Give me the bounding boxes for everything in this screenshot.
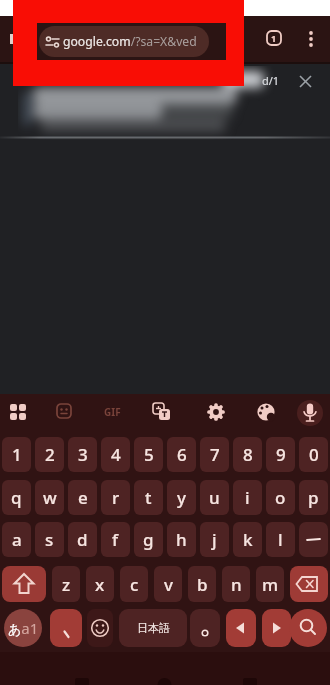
button[interactable]: q [2, 480, 31, 515]
staticText: g [143, 528, 154, 551]
button[interactable] [298, 24, 324, 52]
staticText: あa1 [8, 618, 39, 638]
button[interactable]: w [35, 480, 64, 515]
button[interactable]: i [233, 480, 262, 515]
button[interactable]: k [233, 522, 262, 557]
staticText: 6 [177, 443, 187, 466]
staticText: 9 [276, 443, 286, 466]
staticText: 1 [12, 443, 22, 466]
button[interactable]: 2 [35, 437, 64, 472]
button[interactable]: 3 [68, 437, 97, 472]
button[interactable]: 4 [101, 437, 130, 472]
button[interactable]: x [86, 566, 114, 602]
button[interactable]: e [68, 480, 97, 515]
button[interactable]: j [200, 522, 229, 557]
staticText: 0 [309, 443, 319, 466]
staticText: 5 [144, 443, 154, 466]
staticText: q [11, 486, 22, 509]
button[interactable]: u [200, 480, 229, 515]
button[interactable]: 5 [134, 437, 163, 472]
staticText: 2 [45, 443, 55, 466]
button[interactable] [2, 566, 46, 602]
staticText: k [243, 528, 253, 551]
staticText: w [43, 486, 57, 509]
button[interactable]: l [266, 522, 295, 557]
button[interactable]: h [167, 522, 196, 557]
button[interactable] [50, 609, 82, 647]
staticText: a [12, 528, 22, 551]
staticText: s [45, 528, 54, 551]
button[interactable] [148, 400, 176, 426]
staticText: l [278, 528, 283, 551]
staticText: e [78, 486, 88, 509]
staticText: x [95, 573, 105, 596]
button[interactable]: s [35, 522, 64, 557]
button[interactable]: 6 [167, 437, 196, 472]
button[interactable]: b [188, 566, 216, 602]
staticText: o [275, 486, 286, 509]
button[interactable] [50, 400, 78, 426]
staticText: 1 [271, 32, 277, 44]
button[interactable]: 8 [233, 437, 262, 472]
staticText: r [112, 486, 120, 509]
button[interactable]: d [68, 522, 97, 557]
button[interactable]: z [52, 566, 80, 602]
button[interactable] [299, 522, 328, 557]
staticText: y [177, 486, 186, 509]
button[interactable]: p [299, 480, 328, 515]
button[interactable] [226, 609, 256, 647]
button[interactable] [39, 26, 209, 57]
staticText: google.com/?sa=X&ved [63, 33, 197, 50]
button[interactable] [289, 609, 327, 647]
staticText: j [212, 528, 217, 551]
button[interactable]: 1 [2, 437, 31, 472]
button[interactable]: n [222, 566, 250, 602]
button[interactable] [202, 400, 230, 426]
staticText: p [308, 486, 319, 509]
staticText: z [62, 573, 71, 596]
button[interactable]: GIF [104, 405, 121, 419]
button[interactable]: f [101, 522, 130, 557]
staticText: m [262, 573, 279, 596]
button[interactable] [87, 609, 113, 647]
button[interactable]: 日本語 [119, 609, 187, 647]
staticText: b [197, 573, 208, 596]
staticText: 7 [210, 443, 220, 466]
button[interactable]: 7 [200, 437, 229, 472]
button[interactable] [297, 400, 323, 426]
button[interactable]: v [154, 566, 182, 602]
button[interactable] [299, 75, 312, 88]
button[interactable]: 9 [266, 437, 295, 472]
button[interactable] [290, 566, 328, 602]
button[interactable] [262, 609, 291, 647]
staticText: f [112, 528, 119, 551]
staticText: u [209, 486, 220, 509]
staticText: d [77, 528, 88, 551]
staticText: v [164, 573, 173, 596]
button[interactable] [4, 400, 32, 426]
button[interactable]: あa1 [4, 609, 42, 647]
button[interactable]: y [167, 480, 196, 515]
button[interactable] [190, 609, 220, 647]
button[interactable]: 0 [299, 437, 328, 472]
staticText: 8 [243, 443, 253, 466]
staticText: i [245, 486, 250, 509]
staticText: h [176, 528, 187, 551]
button[interactable]: a [2, 522, 31, 557]
button[interactable]: o [266, 480, 295, 515]
button[interactable]: c [120, 566, 148, 602]
button[interactable] [252, 400, 280, 426]
button[interactable]: 1 [260, 24, 288, 52]
staticText: d/1 [262, 73, 280, 88]
button[interactable]: t [134, 480, 163, 515]
staticText: 3 [78, 443, 88, 466]
staticText: n [231, 573, 242, 596]
staticText: 4 [111, 443, 121, 466]
button[interactable]: r [101, 480, 130, 515]
staticText: c [130, 573, 139, 596]
staticText: 日本語 [137, 621, 170, 635]
button[interactable]: m [256, 566, 284, 602]
button[interactable]: g [134, 522, 163, 557]
staticText: t [145, 486, 152, 509]
